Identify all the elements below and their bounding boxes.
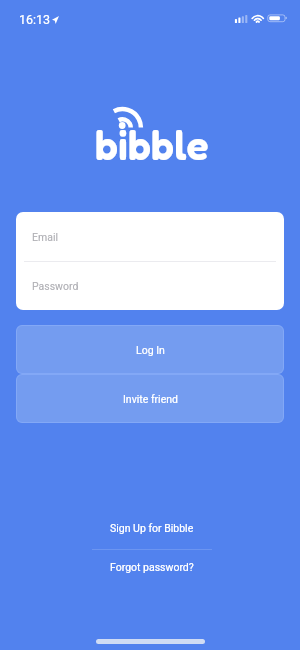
button[interactable]: Invite friend — [16, 374, 284, 423]
staticText: Password — [32, 280, 79, 292]
staticText: Invite friend — [123, 393, 178, 405]
button[interactable]: Forgot password? — [2, 547, 300, 587]
button[interactable]: Email — [16, 212, 284, 261]
button[interactable]: Sign Up for Bibble — [2, 507, 300, 549]
staticText: Forgot password? — [110, 561, 194, 573]
button[interactable]: Password — [16, 262, 284, 310]
staticText: bibble — [95, 120, 209, 170]
staticText: 16:13 — [19, 12, 51, 27]
staticText: Log In — [136, 344, 165, 356]
staticText: Email — [32, 231, 58, 243]
staticText: Sign Up for Bibble — [110, 522, 194, 534]
button[interactable]: Log In — [16, 325, 284, 374]
